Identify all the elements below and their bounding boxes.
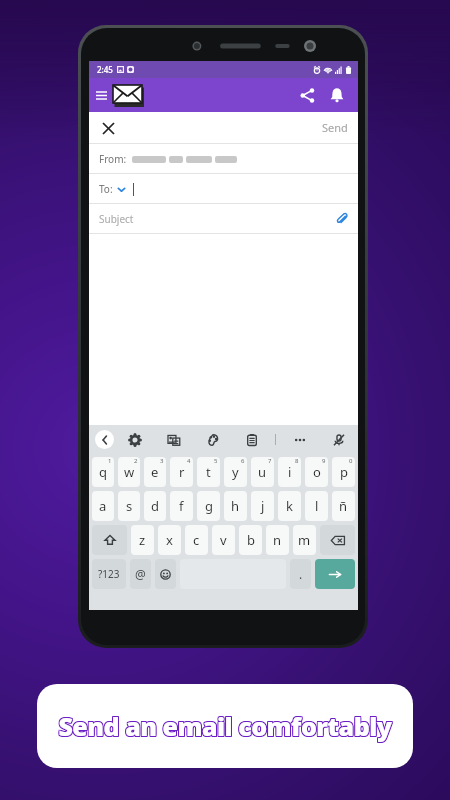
- staticText: c: [193, 531, 200, 549]
- staticText: Send an email comfortably: [57, 710, 391, 744]
- button[interactable]: Send: [318, 116, 352, 139]
- staticText: Send an email comfortably: [59, 710, 393, 744]
- staticText: Send an email comfortably: [57, 709, 391, 743]
- button[interactable]: i: [278, 457, 301, 487]
- button[interactable]: g: [197, 491, 220, 521]
- button[interactable]: q: [92, 457, 114, 487]
- button[interactable]: v: [212, 525, 235, 555]
- button[interactable]: Shift: [92, 525, 127, 555]
- staticText: g: [205, 497, 213, 515]
- button[interactable]: Enter: [315, 559, 355, 589]
- button[interactable]: h: [224, 491, 247, 521]
- staticText: j: [261, 497, 265, 515]
- button[interactable]: From:: [89, 144, 358, 173]
- button[interactable]: Themes: [203, 430, 222, 449]
- button[interactable]: Voice input off: [329, 430, 348, 449]
- staticText: 0: [349, 457, 353, 465]
- staticText: 4: [187, 457, 191, 465]
- staticText: z: [139, 531, 146, 549]
- staticText: 6: [241, 457, 245, 465]
- button[interactable]: Backspace: [320, 525, 355, 555]
- staticText: k: [286, 497, 293, 515]
- button[interactable]: a: [92, 491, 114, 521]
- staticText: 5: [214, 457, 218, 465]
- button[interactable]: c: [185, 525, 208, 555]
- button[interactable]: r: [170, 457, 193, 487]
- button[interactable]: y: [224, 457, 247, 487]
- staticText: h: [231, 497, 240, 515]
- button[interactable]: s: [118, 491, 140, 521]
- button[interactable]: t: [197, 457, 220, 487]
- staticText: u: [258, 463, 267, 481]
- button[interactable]: f: [170, 491, 193, 521]
- button[interactable]: To:: [89, 174, 358, 203]
- button[interactable]: u: [251, 457, 274, 487]
- staticText: Send an email comfortably: [58, 710, 392, 744]
- button[interactable]: Send an email comfortably: [37, 684, 413, 768]
- staticText: f: [179, 497, 184, 515]
- staticText: 9: [322, 457, 326, 465]
- staticText: 3: [160, 457, 164, 465]
- button[interactable]: m: [293, 525, 316, 555]
- button[interactable]: @: [130, 559, 151, 589]
- button[interactable]: d: [144, 491, 166, 521]
- staticText: Send an email comfortably: [58, 708, 392, 742]
- staticText: d: [151, 497, 159, 515]
- button[interactable]: o: [305, 457, 328, 487]
- button[interactable]: Clipboard: [242, 430, 261, 449]
- button[interactable]: .: [290, 559, 311, 589]
- staticText: Subject: [99, 212, 134, 226]
- staticText: @: [135, 566, 146, 582]
- button[interactable]: Translate: [164, 430, 183, 449]
- button[interactable]: w: [118, 457, 140, 487]
- staticText: p: [340, 463, 348, 481]
- staticText: y: [232, 463, 239, 481]
- button[interactable]: Mail: [111, 83, 145, 107]
- button[interactable]: Subject: [89, 204, 358, 233]
- staticText: q: [99, 463, 107, 481]
- staticText: To:: [99, 182, 113, 196]
- staticText: 7: [268, 457, 272, 465]
- button[interactable]: Emoji: [155, 559, 176, 589]
- button[interactable]: Menu: [93, 87, 109, 103]
- button[interactable]: k: [278, 491, 301, 521]
- staticText: w: [124, 463, 135, 481]
- staticText: Send an email comfortably: [57, 708, 391, 742]
- staticText: a: [99, 497, 107, 515]
- staticText: ?123: [98, 567, 120, 581]
- staticText: 2: [134, 457, 138, 465]
- staticText: v: [220, 531, 227, 549]
- staticText: b: [247, 531, 255, 549]
- button[interactable]: Share: [294, 82, 320, 108]
- staticText: 8: [295, 457, 299, 465]
- button[interactable]: ñ: [332, 491, 355, 521]
- staticText: .: [299, 566, 303, 582]
- button[interactable]: More options: [290, 430, 309, 449]
- staticText: s: [126, 497, 133, 515]
- button[interactable]: Notifications: [324, 82, 350, 108]
- button[interactable]: j: [251, 491, 274, 521]
- staticText: Send an email comfortably: [58, 709, 392, 743]
- button[interactable]: Attach file: [333, 210, 351, 228]
- staticText: r: [179, 463, 185, 481]
- button[interactable]: p: [332, 457, 355, 487]
- staticText: e: [151, 463, 159, 481]
- staticText: Send: [322, 120, 348, 135]
- button[interactable]: l: [305, 491, 328, 521]
- staticText: From:: [99, 152, 127, 166]
- button[interactable]: Settings: [125, 430, 144, 449]
- staticText: ñ: [339, 497, 348, 515]
- button[interactable]: ?123: [92, 559, 126, 589]
- staticText: l: [315, 497, 319, 515]
- button[interactable]: Back: [95, 430, 114, 449]
- button[interactable]: n: [266, 525, 289, 555]
- staticText: i: [288, 463, 292, 481]
- button[interactable]: e: [144, 457, 166, 487]
- staticText: Send an email comfortably: [59, 709, 393, 743]
- button[interactable]: b: [239, 525, 262, 555]
- button[interactable]: z: [131, 525, 154, 555]
- button[interactable]: Close: [97, 117, 119, 139]
- button[interactable]: x: [158, 525, 181, 555]
- staticText: 2:45: [97, 64, 113, 75]
